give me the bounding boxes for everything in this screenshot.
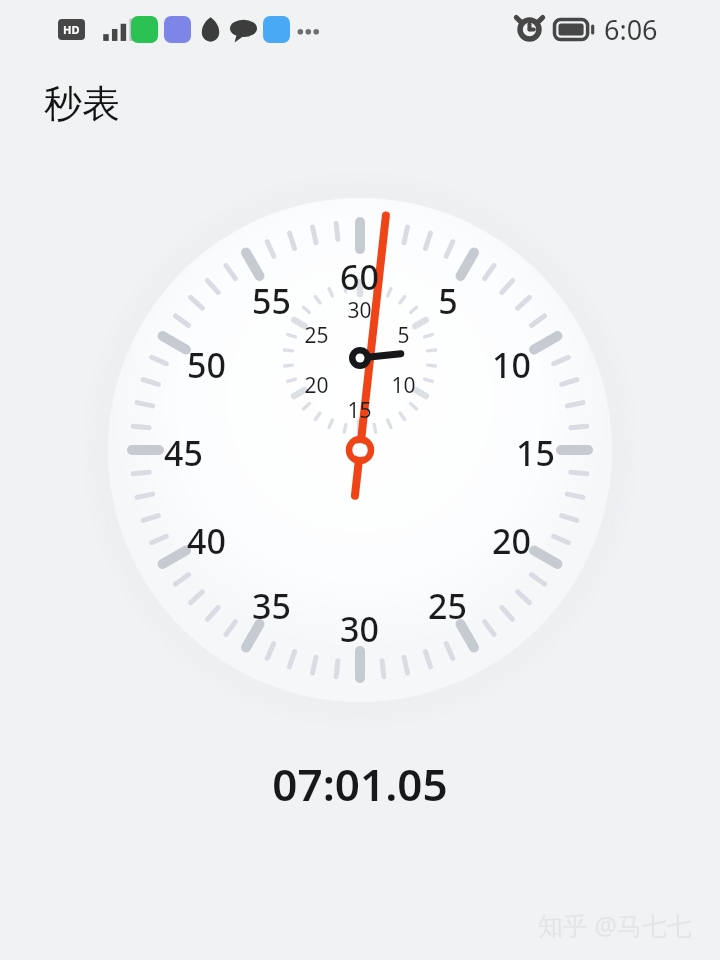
- staticText: 45: [164, 430, 203, 476]
- staticText: 5: [397, 321, 410, 350]
- staticText: 10: [492, 342, 531, 388]
- staticText: 50: [187, 342, 226, 388]
- staticText: 55: [252, 278, 291, 324]
- staticText: 20: [492, 518, 531, 564]
- staticText: 10: [391, 371, 416, 400]
- staticText: 25: [428, 583, 467, 629]
- staticText: HD: [63, 22, 80, 37]
- button[interactable]: 60: [0, 0, 720, 960]
- staticText: 15: [347, 396, 372, 425]
- staticText: 60: [340, 254, 379, 300]
- other: Battery: [553, 18, 595, 41]
- staticText: 6:06: [604, 11, 658, 48]
- staticText: 30: [347, 296, 372, 325]
- staticText: 知乎 @马七七: [538, 908, 692, 942]
- staticText: 25: [304, 321, 329, 350]
- other: Alarm: [516, 16, 543, 43]
- staticText: 07:01.05: [272, 754, 448, 814]
- staticText: 40: [187, 518, 226, 564]
- staticText: 5: [438, 278, 458, 324]
- staticText: 35: [252, 583, 291, 629]
- staticText: 15: [516, 430, 555, 476]
- staticText: 20: [304, 371, 329, 400]
- staticText: 30: [340, 606, 379, 652]
- staticText: 秒表: [44, 80, 120, 128]
